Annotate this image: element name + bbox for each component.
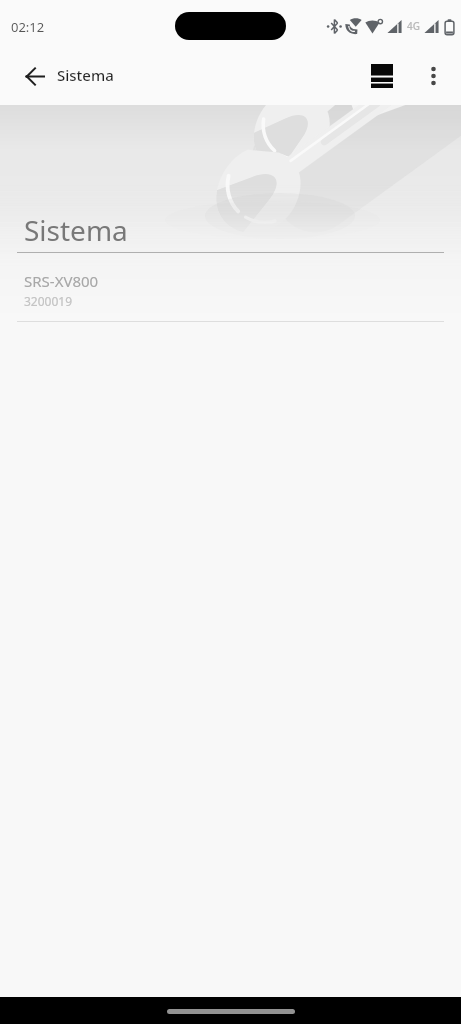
- button[interactable]: Back: [11, 52, 58, 100]
- staticText: 4G: [407, 19, 420, 33]
- staticText: 3200019: [24, 293, 73, 309]
- staticText: SRS-XV800: [24, 271, 99, 291]
- staticText: Sistema: [57, 65, 114, 85]
- button[interactable]: View mode: [355, 52, 409, 100]
- staticText: Sistema: [24, 211, 128, 249]
- staticText: 02:12: [11, 18, 45, 36]
- button[interactable]: More options: [409, 52, 458, 100]
